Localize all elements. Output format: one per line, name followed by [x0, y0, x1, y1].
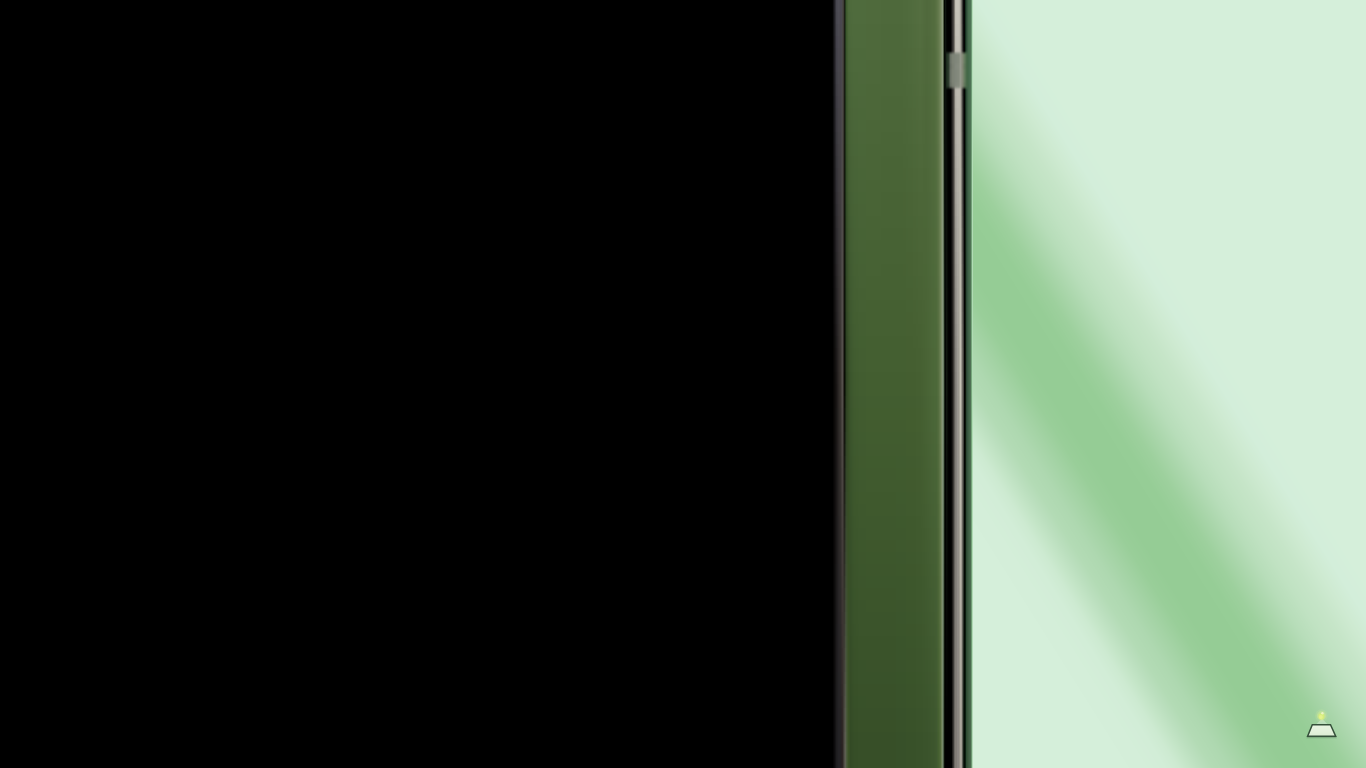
- button[interactable]: Phone side profile photo: [0, 0, 1366, 768]
